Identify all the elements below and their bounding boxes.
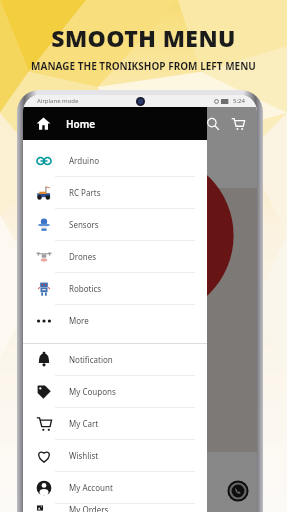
button[interactable]: Wishlist [23,440,207,471]
staticText: Robotics [69,283,102,294]
button[interactable]: More [23,305,207,336]
button[interactable]: Search [204,115,222,133]
staticText: Wishlist [69,450,99,461]
staticText: Home [66,117,96,131]
button[interactable]: Robotics [23,273,207,304]
button[interactable]: Cart [229,115,247,133]
button[interactable]: Arduino [23,145,207,176]
staticText: 5:24 [233,97,245,105]
button[interactable]: Notification [23,344,207,375]
staticText: Robotics [126,174,155,184]
staticText: Sensors [69,219,99,230]
staticText: RC Parts [69,187,101,198]
button[interactable]: View all [121,434,160,448]
button[interactable]: Sensors [23,209,207,240]
button[interactable]: WhatsApp [227,480,249,502]
button[interactable]: Drones [23,241,207,272]
staticText: Arduino [69,155,99,166]
button[interactable]: My Cart [23,408,207,439]
staticText: View all [127,436,154,446]
staticText: MANAGE THE TRONIKSHOP FROM LEFT MENU [31,59,256,73]
staticText: More [69,315,89,326]
staticText: SMOOTH MENU [51,22,236,53]
staticText: Drones [69,251,97,262]
staticText: My Orders [69,504,109,512]
button[interactable]: My Orders [23,504,207,512]
button[interactable]: My Coupons [23,376,207,407]
button[interactable]: Home [36,116,96,131]
staticText: My Account [69,482,113,493]
button[interactable]: RC Parts [23,177,207,208]
button[interactable]: My Account [23,472,207,503]
staticText: Airplane mode [37,97,79,105]
staticText: Notification [69,354,113,365]
staticText: My Cart [69,418,99,429]
staticText: My Coupons [69,386,116,397]
